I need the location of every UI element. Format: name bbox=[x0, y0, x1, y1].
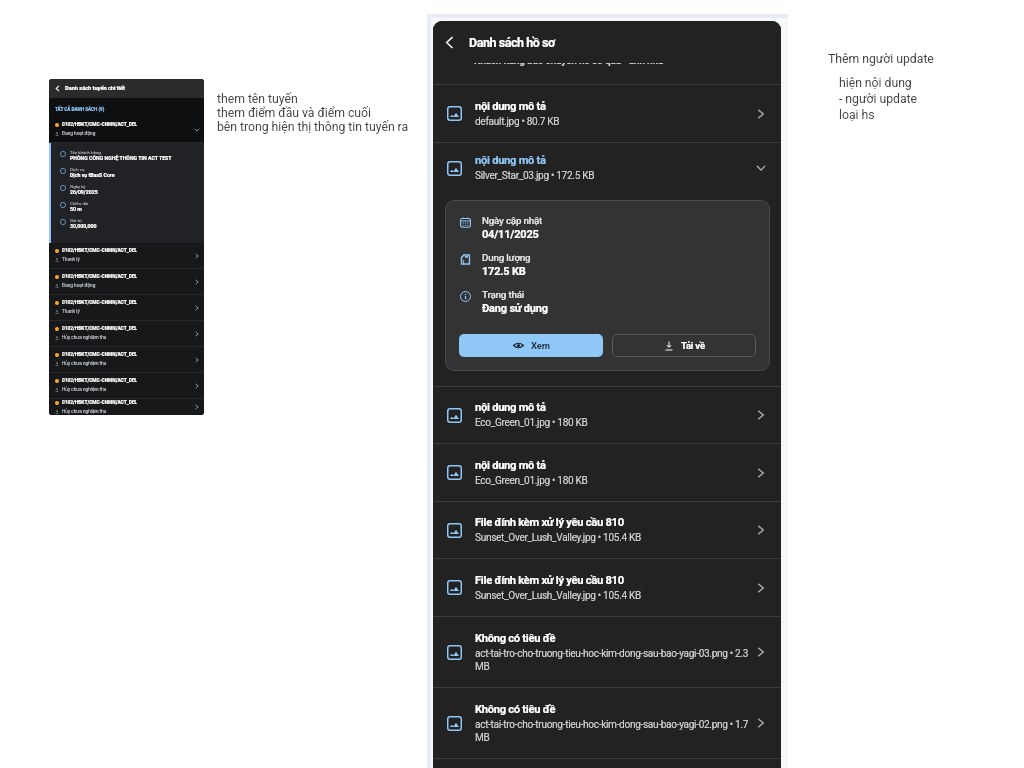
staticText: Eco_Green_01.jpg • 180 KB bbox=[475, 417, 588, 429]
staticText: Thanh lý bbox=[62, 257, 80, 263]
staticText: Dịch vụ tBaaS Core bbox=[70, 172, 115, 178]
staticText: 172.5 KB bbox=[482, 265, 526, 278]
staticText: Không có tiêu đề bbox=[475, 703, 556, 716]
staticText: act-tai-tro-cho-truong-tieu-hoc-kim-dong… bbox=[475, 648, 750, 673]
button[interactable]: Back bbox=[49, 79, 65, 98]
staticText: Thanh lý bbox=[62, 309, 80, 315]
button[interactable]: 0102/HĐKT/CMC-CNMN/ACT_DEL bbox=[49, 269, 204, 294]
staticText: Chiều dài bbox=[70, 201, 89, 206]
button[interactable]: Open bbox=[754, 523, 768, 537]
staticText: Đang hoạt động bbox=[62, 283, 96, 289]
staticText: nội dung mô tả bbox=[475, 459, 546, 472]
staticText: Xem bbox=[531, 340, 550, 351]
staticText: Giá trị bbox=[70, 218, 82, 223]
staticText: them tên tuyến bbox=[217, 92, 298, 106]
staticText: Eco_Green_01.jpg • 180 KB bbox=[475, 475, 588, 487]
staticText: nội dung mô tả bbox=[475, 154, 546, 167]
button[interactable]: 0102/HĐKT/CMC-CNMN/ACT_DEL bbox=[49, 347, 204, 372]
button[interactable]: 0102/HĐKT/CMC-CNMN/ACT_DEL bbox=[49, 243, 204, 268]
staticText: Dịch vụ bbox=[70, 167, 85, 172]
staticText: Sunset_Over_Lush_Valley.jpg • 105.4 KB bbox=[475, 590, 642, 602]
staticText: Silver_Star_03.jpg • 172.5 KB bbox=[475, 170, 595, 182]
staticText: Thêm người update bbox=[828, 52, 934, 66]
staticText: Đang hoạt động bbox=[62, 131, 96, 137]
button[interactable]: Open bbox=[754, 581, 768, 595]
button[interactable]: Tải về bbox=[612, 334, 756, 357]
staticText: Đang sử dụng bbox=[482, 302, 548, 315]
staticText: hiện nội dung bbox=[839, 76, 912, 90]
staticText: - người update bbox=[839, 92, 917, 106]
staticText: 50 m bbox=[70, 206, 82, 212]
staticText: bên trong hiện thị thông tin tuyến ra bbox=[217, 120, 409, 134]
button[interactable]: nội dung mô tả bbox=[433, 143, 781, 193]
staticText: 0102/HĐKT/CMC-CNMN/ACT_DEL bbox=[62, 326, 138, 332]
button[interactable]: Không có tiêu đề bbox=[433, 617, 781, 687]
button[interactable]: Open bbox=[754, 645, 768, 659]
button[interactable]: nội dung mô tả bbox=[433, 387, 781, 443]
staticText: 0102/HĐKT/CMC-CNMN/ACT_DEL bbox=[62, 300, 138, 306]
staticText: Danh sách hồ sơ bbox=[469, 35, 555, 50]
staticText: PHÒNG CÔNG NGHỆ THÔNG TIN ACT TEST bbox=[70, 155, 172, 161]
button[interactable]: 0102/HĐKT/CMC-CNMN/ACT_DEL bbox=[49, 373, 204, 398]
staticText: 0102/HĐKT/CMC-CNMN/ACT_DEL bbox=[62, 400, 138, 406]
staticText: TẤT CẢ DANH SÁCH (9) bbox=[55, 107, 105, 112]
staticText: Dung lượng bbox=[482, 252, 531, 263]
staticText: act-tai-tro-cho-truong-tieu-hoc-kim-dong… bbox=[475, 719, 750, 744]
staticText: Hủy chưa nghiệm thu bbox=[62, 361, 107, 367]
staticText: loại hs bbox=[839, 108, 875, 122]
staticText: 0102/HĐKT/CMC-CNMN/ACT_DEL bbox=[62, 122, 138, 128]
staticText: Ngày ký bbox=[70, 184, 86, 189]
staticText: Hủy chưa nghiệm thu bbox=[62, 335, 107, 341]
button[interactable]: File đính kèm xử lý yêu cầu 810 bbox=[433, 559, 781, 616]
staticText: them điểm đầu và điểm cuối bbox=[217, 106, 371, 120]
staticText: nội dung mô tả bbox=[475, 100, 546, 113]
staticText: Sunset_Over_Lush_Valley.jpg • 105.4 KB bbox=[475, 532, 642, 544]
staticText: nội dung mô tả bbox=[475, 401, 546, 414]
button[interactable]: Collapse bbox=[754, 161, 768, 175]
button[interactable]: nội dung mô tả bbox=[433, 444, 781, 501]
staticText: default.jpg • 80.7 KB bbox=[475, 116, 560, 128]
button[interactable]: 0102/HĐKT/CMC-CNMN/ACT_DEL bbox=[49, 295, 204, 320]
staticText: Danh sách tuyến chi tiết bbox=[65, 85, 125, 92]
button[interactable]: Open bbox=[754, 716, 768, 730]
staticText: 30,000,000 bbox=[70, 223, 97, 229]
button[interactable]: 0102/HĐKT/CMC-CNMN/ACT_DEL bbox=[49, 321, 204, 346]
button[interactable]: Xem bbox=[459, 334, 603, 357]
button[interactable]: Back bbox=[433, 21, 465, 63]
button[interactable]: Open bbox=[754, 408, 768, 422]
button[interactable]: Không có tiêu đề bbox=[433, 688, 781, 758]
button[interactable]: File đính kèm xử lý yêu cầu 810 bbox=[433, 502, 781, 558]
staticText: Hủy chưa nghiệm thu bbox=[62, 387, 107, 393]
staticText: Không có tiêu đề bbox=[475, 632, 556, 645]
button[interactable]: nội dung mô tả bbox=[433, 85, 781, 142]
staticText: 04/11/2025 bbox=[482, 228, 539, 241]
staticText: Trạng thái bbox=[482, 289, 525, 300]
staticText: Tên khách hàng bbox=[70, 150, 101, 155]
staticText: 0102/HĐKT/CMC-CNMN/ACT_DEL bbox=[62, 248, 138, 254]
staticText: Hủy chưa nghiệm thu bbox=[62, 409, 107, 415]
staticText: Ngày cập nhật bbox=[482, 215, 543, 226]
staticText: Khách hàng báo chuyển hồ sơ qua • ảnh nh… bbox=[474, 63, 664, 67]
staticText: File đính kèm xử lý yêu cầu 810 bbox=[475, 516, 624, 529]
button[interactable]: 0102/HĐKT/CMC-CNMN/ACT_DEL bbox=[49, 117, 204, 142]
staticText: 0102/HĐKT/CMC-CNMN/ACT_DEL bbox=[62, 274, 138, 280]
button[interactable]: Open bbox=[754, 107, 768, 121]
staticText: 0102/HĐKT/CMC-CNMN/ACT_DEL bbox=[62, 352, 138, 358]
staticText: File đính kèm xử lý yêu cầu 810 bbox=[475, 574, 624, 587]
staticText: 26/09/2025 bbox=[70, 189, 98, 195]
button[interactable]: 0102/HĐKT/CMC-CNMN/ACT_DEL bbox=[49, 399, 204, 415]
staticText: Tải về bbox=[681, 340, 705, 351]
staticText: 0102/HĐKT/CMC-CNMN/ACT_DEL bbox=[62, 378, 138, 384]
button[interactable]: Open bbox=[754, 466, 768, 480]
